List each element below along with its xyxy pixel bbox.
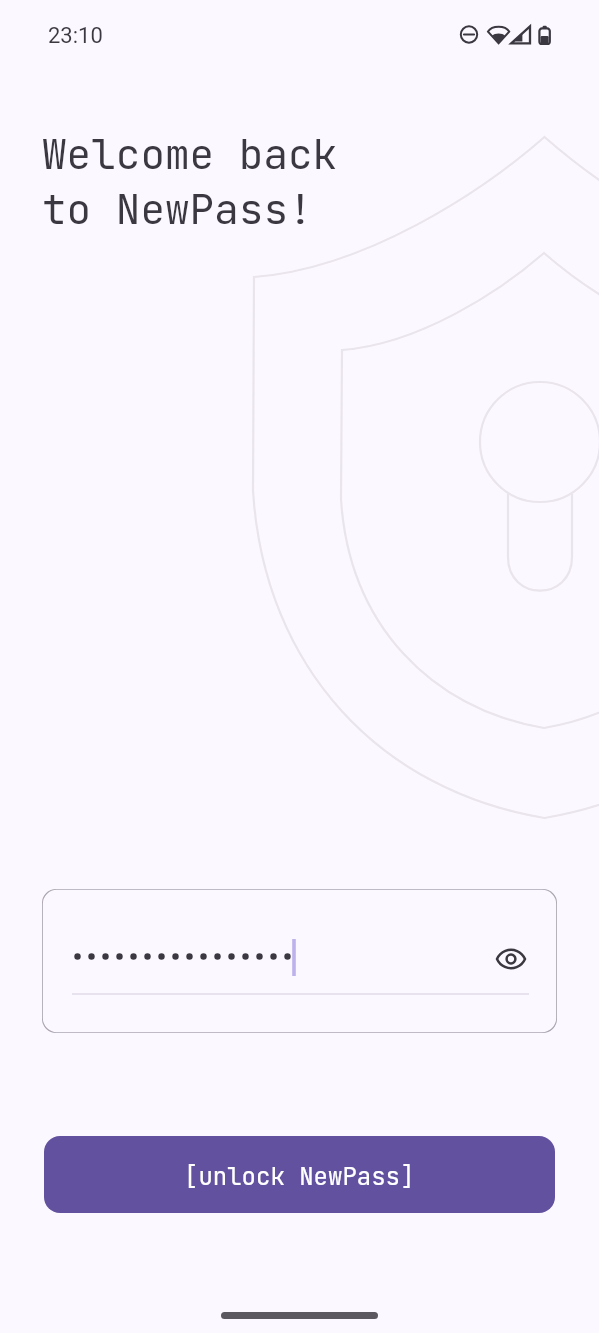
button[interactable]: Show password	[489, 937, 533, 981]
staticText: 23:10	[48, 23, 103, 49]
button[interactable]: [unlock NewPass]	[44, 1136, 555, 1213]
staticText: [unlock NewPass]	[184, 1161, 415, 1193]
button[interactable]: Show password	[42, 889, 557, 1033]
staticText: Welcome back to NewPass!	[42, 127, 338, 236]
